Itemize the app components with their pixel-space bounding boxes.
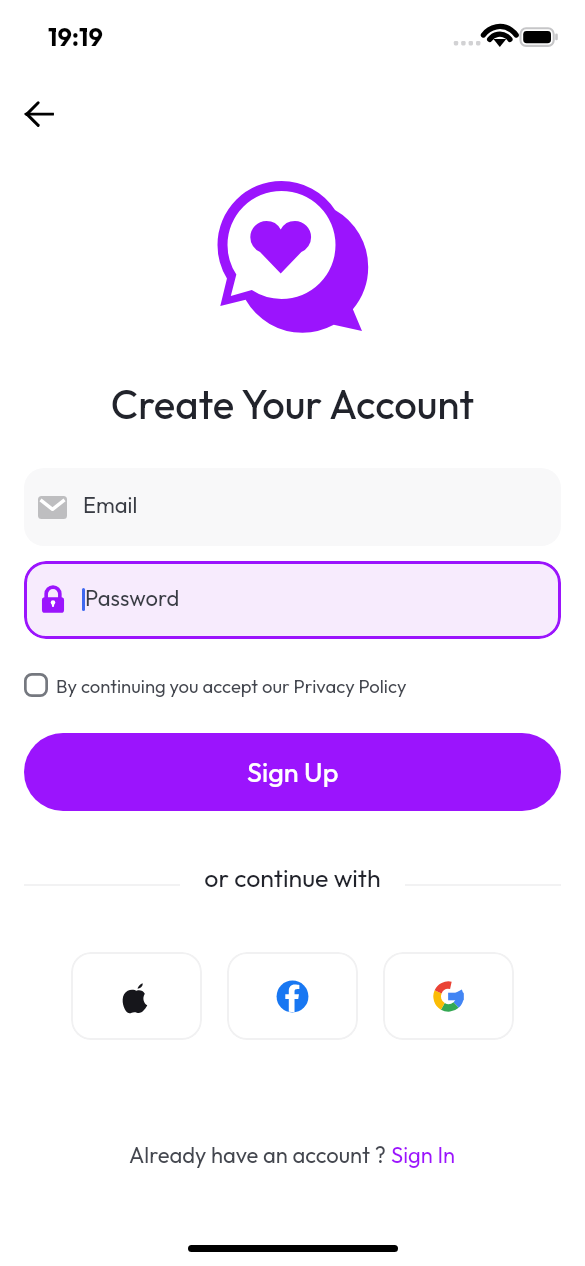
button[interactable]: Sign In: [391, 1141, 456, 1169]
staticText: By continuing you accept our Privacy Pol…: [56, 674, 407, 697]
button[interactable]: By continuing you accept our Privacy Pol…: [24, 662, 407, 708]
staticText: Sign In: [391, 1141, 456, 1169]
staticText: or continue with: [0, 862, 585, 894]
button[interactable]: Password: [24, 561, 561, 639]
button[interactable]: Sign up with Google: [383, 952, 514, 1040]
staticText: Create Your Account: [0, 379, 585, 429]
staticText: 19:19: [48, 21, 103, 53]
staticText: Email: [83, 491, 138, 519]
button[interactable]: Sign Up: [24, 733, 561, 811]
staticText: Password: [85, 584, 180, 612]
staticText: Already have an account ?: [129, 1141, 391, 1169]
button[interactable]: Sign up with Facebook: [227, 952, 358, 1040]
button[interactable]: Back: [6, 90, 54, 138]
button[interactable]: Email: [24, 468, 561, 546]
button[interactable]: Sign up with Apple: [71, 952, 202, 1040]
staticText: Sign Up: [247, 755, 339, 789]
